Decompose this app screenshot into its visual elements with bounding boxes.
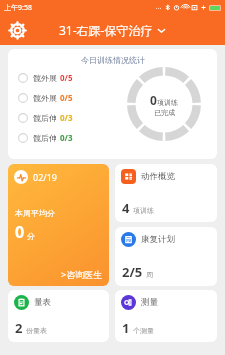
staticText: 0/3 (60, 132, 73, 143)
button[interactable]: 今日训练情况统计 (8, 49, 217, 159)
staticText: 2/5 (122, 263, 143, 281)
staticText: 0 (150, 92, 157, 108)
staticText: 项训练 (157, 98, 178, 107)
button[interactable]: 测量 (115, 290, 217, 342)
staticText: 个测量 (133, 326, 154, 335)
button[interactable]: >咨询医生 (61, 268, 109, 286)
button[interactable]: 髋后伸 (16, 110, 75, 125)
button[interactable]: 髋后伸 (16, 130, 75, 145)
staticText: 髋后伸 (33, 113, 57, 123)
staticText: 髋外展 (33, 93, 57, 103)
button[interactable]: 动作概览 (115, 164, 217, 222)
staticText: 康复计划 (141, 234, 175, 245)
button[interactable]: 髋外展 (16, 70, 75, 85)
button[interactable]: 31-右踝-保守治疗 (55, 20, 170, 40)
button[interactable]: 髋外展 (16, 90, 75, 105)
staticText: 02/19 (33, 171, 57, 183)
staticText: 4 (122, 199, 130, 217)
staticText: 周 (146, 270, 153, 279)
staticText: 量表 (34, 297, 51, 308)
staticText: 0 (15, 221, 25, 243)
staticText: 本周平均分 (15, 208, 55, 218)
staticText: 0/5 (60, 92, 73, 103)
button[interactable]: Settings (6, 19, 28, 41)
staticText: 测量 (141, 297, 158, 308)
staticText: 份量表 (26, 326, 47, 335)
staticText: 髋后伸 (33, 133, 57, 143)
staticText: 上午9:58 (4, 3, 32, 13)
staticText: 1 (122, 319, 130, 337)
button[interactable]: 康复计划 (115, 227, 217, 286)
staticText: 已完成 (154, 108, 175, 117)
staticText: 0/5 (60, 72, 73, 83)
staticText: 31-右踝-保守治疗 (59, 22, 153, 38)
staticText: 2 (15, 319, 23, 337)
staticText: 今日训练情况统计 (81, 55, 145, 65)
staticText: 分 (27, 231, 35, 241)
staticText: 动作概览 (141, 171, 175, 182)
staticText: 0/3 (60, 112, 73, 123)
button[interactable]: 量表 (8, 290, 109, 342)
button[interactable]: 02/19 (8, 164, 109, 286)
staticText: 项训练 (133, 206, 154, 215)
staticText: 髋外展 (33, 73, 57, 83)
